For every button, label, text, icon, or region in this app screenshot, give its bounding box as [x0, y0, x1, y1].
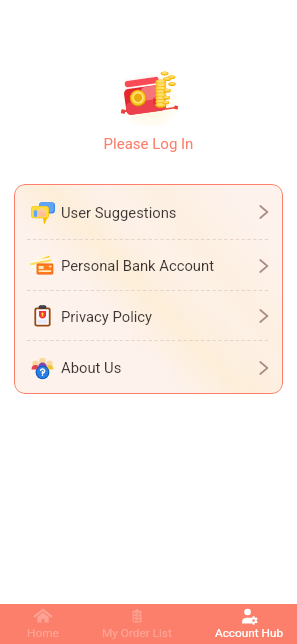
button[interactable]: About Us [14, 341, 283, 394]
staticText: Privacy Policy [61, 308, 153, 325]
button[interactable]: Account Hub [203, 607, 295, 640]
button[interactable]: Privacy Policy [14, 291, 283, 341]
staticText: Personal Bank Account [61, 257, 215, 274]
button[interactable]: My Order List [91, 607, 183, 640]
staticText: User Suggestions [61, 204, 177, 221]
button[interactable]: User Suggestions [14, 184, 283, 240]
staticText: Home [27, 626, 59, 640]
button[interactable]: Home [0, 607, 89, 640]
staticText: Please Log In [0, 135, 297, 153]
staticText: Account Hub [215, 626, 284, 640]
staticText: About Us [61, 359, 122, 376]
staticText: My Order List [102, 626, 172, 640]
button[interactable]: Personal Bank Account [14, 240, 283, 291]
